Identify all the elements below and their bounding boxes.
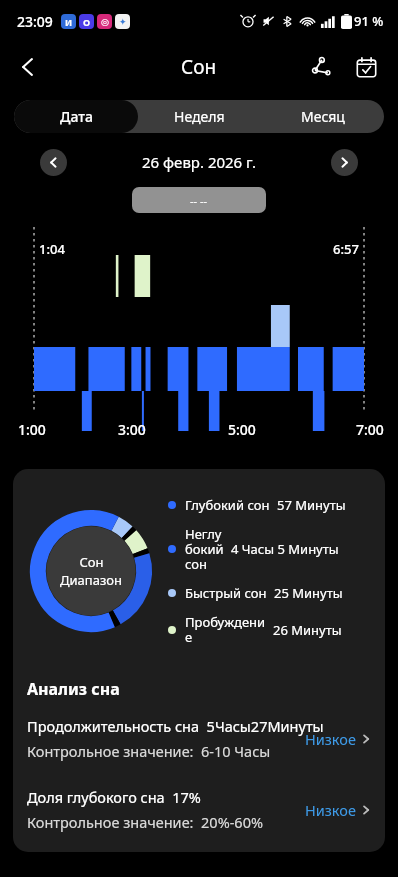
- button[interactable]: Продолжительность сна 5Часы27Минуты: [13, 716, 385, 761]
- button[interactable]: Месяц: [261, 100, 384, 133]
- staticText: 25 Минуты: [274, 584, 343, 602]
- button[interactable]: Previous day: [40, 149, 67, 176]
- staticText: Пробуждени е: [185, 613, 266, 646]
- staticText: ✦: [119, 17, 127, 27]
- staticText: Низкое: [305, 800, 356, 820]
- staticText: 5:00: [228, 420, 256, 439]
- staticText: И: [65, 16, 73, 28]
- staticText: Сон: [79, 553, 104, 571]
- staticText: 1:00: [18, 420, 46, 439]
- staticText: Контрольное значение: 6-10 Часы: [27, 741, 271, 761]
- staticText: Неделя: [174, 107, 225, 126]
- staticText: Глубокий сон: [185, 496, 270, 514]
- staticText: Сон: [181, 54, 217, 80]
- staticText: 26 февр. 2026 г.: [142, 152, 257, 172]
- staticText: Месяц: [301, 107, 345, 126]
- staticText: 1:04: [39, 240, 65, 258]
- staticText: 6:57: [333, 240, 359, 258]
- staticText: 4 Часы 5 Минуты: [231, 540, 339, 558]
- staticText: Диапазон: [60, 571, 122, 589]
- button[interactable]: Дата: [14, 100, 138, 133]
- staticText: 57 Минуты: [277, 496, 346, 514]
- button[interactable]: Share: [300, 47, 340, 87]
- staticText: Быстрый сон: [185, 584, 267, 602]
- button[interactable]: -- --: [132, 187, 266, 213]
- staticText: Контрольное значение: 20%-60%: [27, 812, 263, 832]
- staticText: Продолжительность сна 5Часы27Минуты: [27, 716, 324, 736]
- button[interactable]: Next day: [331, 149, 358, 176]
- button[interactable]: Back: [6, 45, 50, 89]
- staticText: O: [83, 16, 91, 28]
- button[interactable]: Доля глубокого сна 17%: [13, 787, 385, 832]
- staticText: 26 Минуты: [273, 621, 342, 639]
- staticText: Низкое: [305, 729, 356, 749]
- button[interactable]: Неделя: [138, 100, 261, 133]
- staticText: 23:09: [17, 12, 53, 31]
- staticText: -- --: [190, 193, 208, 208]
- staticText: Анализ сна: [27, 678, 120, 700]
- staticText: Неглу бокий сон: [185, 525, 224, 573]
- button[interactable]: Calendar: [346, 47, 386, 87]
- staticText: Доля глубокого сна 17%: [27, 787, 201, 807]
- staticText: Дата: [60, 107, 93, 126]
- staticText: 3:00: [118, 420, 146, 439]
- staticText: ◎: [101, 17, 109, 27]
- staticText: 91 %: [354, 12, 384, 30]
- staticText: 7:00: [356, 420, 384, 439]
